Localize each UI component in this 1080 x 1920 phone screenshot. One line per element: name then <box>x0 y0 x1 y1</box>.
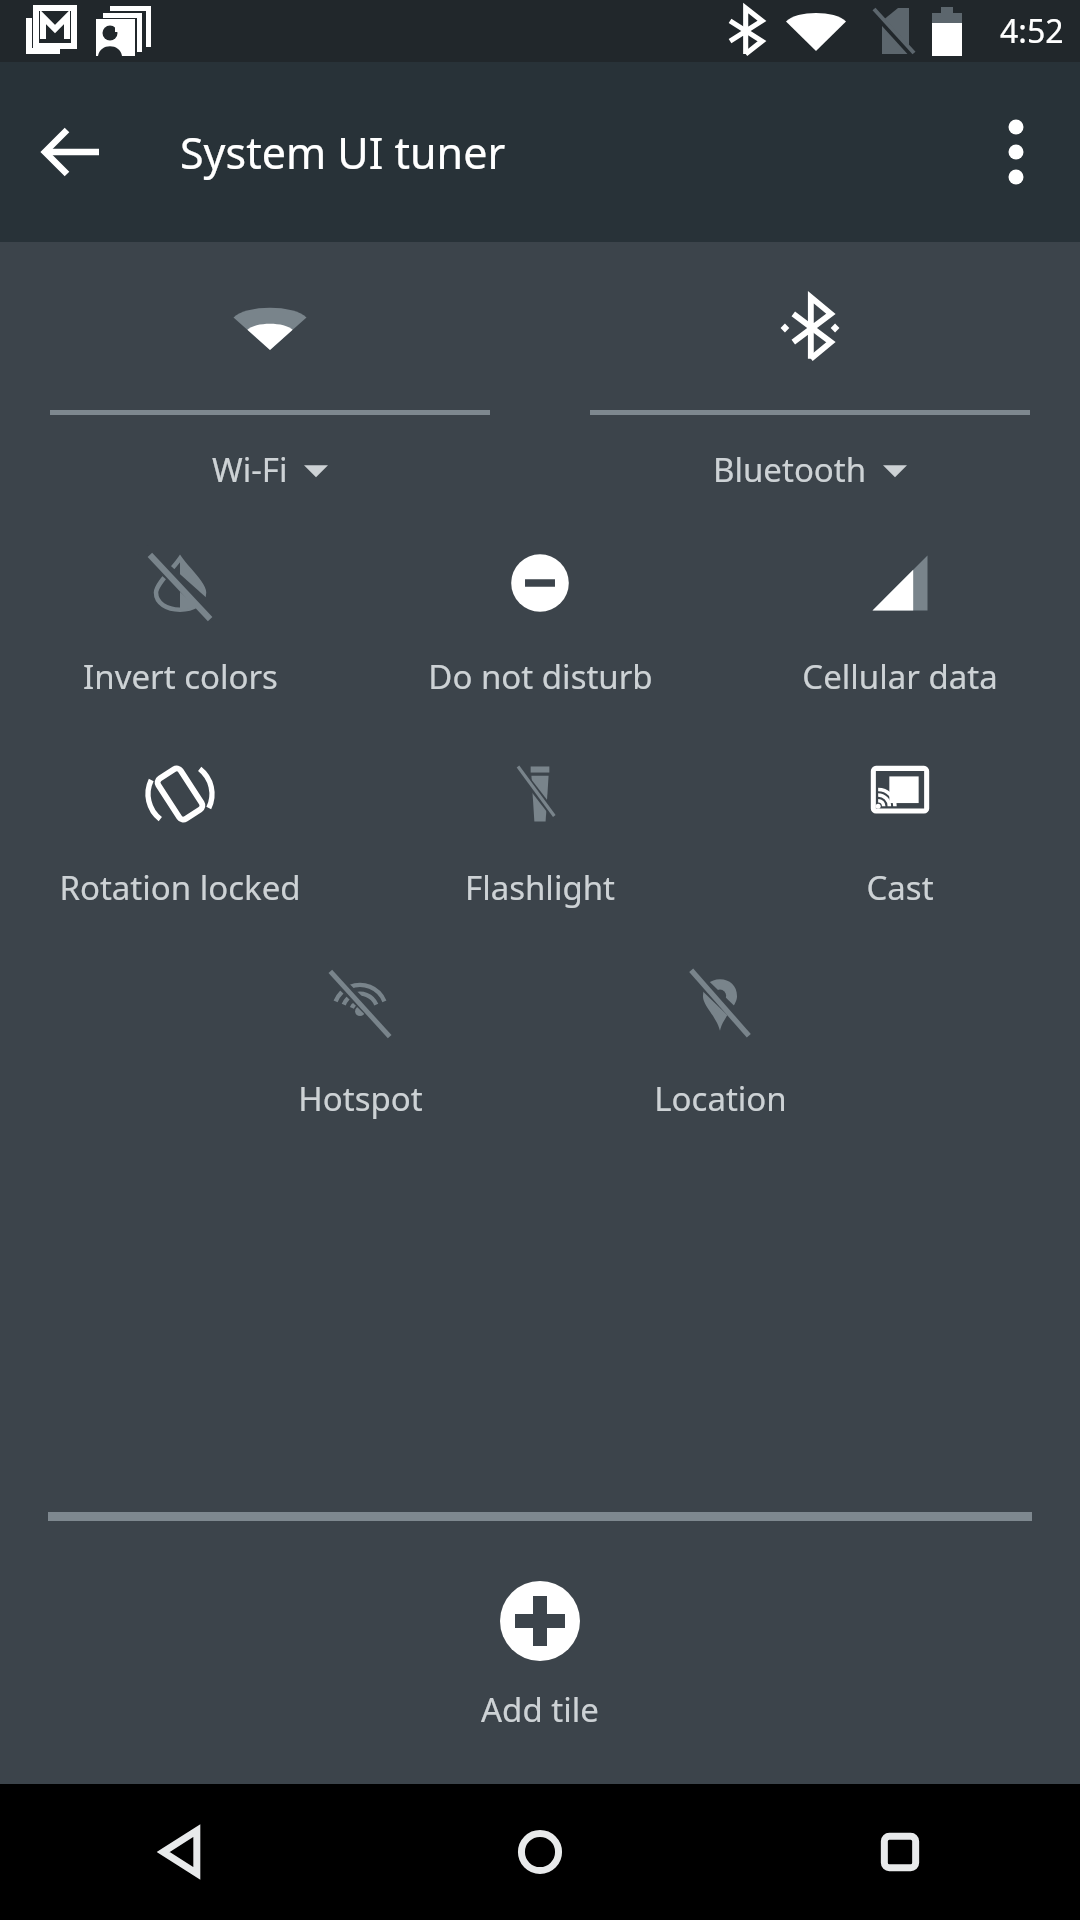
button[interactable]: Back <box>30 110 114 194</box>
button[interactable]: Bluetooth <box>540 280 1080 492</box>
button[interactable]: Wi-Fi <box>0 280 540 492</box>
button[interactable]: Home <box>360 1784 720 1920</box>
button[interactable]: Rotation locked <box>0 751 360 910</box>
staticText: Location <box>654 1076 787 1121</box>
button[interactable]: Cellular data <box>720 540 1080 699</box>
staticText: 4:52 <box>1000 9 1064 53</box>
button[interactable]: Add tile <box>0 1581 1080 1732</box>
button[interactable]: Location <box>540 962 900 1121</box>
staticText: Flashlight <box>465 865 615 910</box>
staticText: Rotation locked <box>59 865 301 910</box>
button[interactable]: Do not disturb <box>360 540 720 699</box>
staticText: System UI tuner <box>180 123 506 182</box>
staticText: Invert colors <box>83 654 278 699</box>
button[interactable]: Invert colors <box>0 540 360 699</box>
button[interactable]: Hotspot <box>180 962 540 1121</box>
staticText: Do not disturb <box>428 654 653 699</box>
staticText: Cellular data <box>802 654 998 699</box>
staticText: Bluetooth <box>713 447 867 492</box>
button[interactable]: Flashlight <box>360 751 720 910</box>
staticText: Add tile <box>481 1687 599 1732</box>
staticText: Cast <box>866 865 934 910</box>
staticText: Wi-Fi <box>212 447 288 492</box>
button[interactable]: Cast <box>720 751 1080 910</box>
button[interactable]: Back <box>0 1784 360 1920</box>
button[interactable]: More options <box>974 110 1058 194</box>
staticText: Hotspot <box>298 1076 423 1121</box>
button[interactable]: Recent apps <box>720 1784 1080 1920</box>
